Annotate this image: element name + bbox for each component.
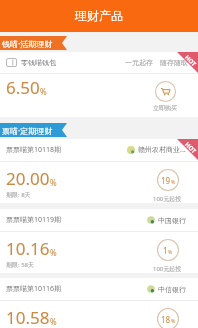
staticText: % bbox=[168, 249, 173, 256]
staticText: % bbox=[171, 179, 176, 186]
staticText: 10.16 bbox=[6, 237, 50, 260]
staticText: 中国银行 bbox=[158, 216, 186, 225]
staticText: % bbox=[50, 247, 57, 258]
staticText: % bbox=[50, 316, 57, 327]
staticText: 零钱喵钱包 bbox=[21, 58, 56, 67]
button[interactable]: 票喵·定期理财 bbox=[0, 123, 198, 137]
staticText: HOT bbox=[183, 54, 198, 68]
staticText: % bbox=[40, 86, 47, 97]
staticText: 随存随取 bbox=[160, 58, 188, 67]
staticText: HOT bbox=[183, 141, 198, 155]
staticText: 钱喵·活期理财 bbox=[2, 38, 53, 49]
staticText: 赣州农村商业... bbox=[138, 145, 186, 155]
staticText: 100元起投 bbox=[153, 195, 182, 203]
staticText: 票票喵第10118期 bbox=[6, 145, 62, 155]
button[interactable]: 立即投资 bbox=[153, 239, 182, 273]
button[interactable]: 钱喵·活期理财 bbox=[0, 36, 198, 50]
staticText: 19 bbox=[161, 175, 171, 186]
staticText: 100元起投 bbox=[153, 265, 182, 273]
button[interactable]: 立即投资 bbox=[153, 308, 182, 328]
button[interactable]: 票票喵第10119期 bbox=[0, 209, 198, 273]
button[interactable]: 票票喵第10118期 bbox=[0, 139, 198, 203]
staticText: 立即购买 bbox=[153, 104, 177, 112]
button[interactable]: 立即购买 bbox=[153, 81, 177, 112]
staticText: 20.00 bbox=[6, 167, 50, 190]
staticText: 期限: 58天 bbox=[6, 261, 35, 269]
staticText: 票票喵第10116期 bbox=[6, 284, 62, 294]
staticText: 一元起存 bbox=[125, 58, 153, 67]
staticText: 票喵·定期理财 bbox=[2, 125, 53, 136]
staticText: 1 bbox=[163, 245, 168, 256]
staticText: 中信银行 bbox=[158, 285, 186, 294]
button[interactable]: 零钱喵钱包 bbox=[0, 52, 198, 117]
staticText: % bbox=[171, 318, 176, 325]
staticText: 票票喵第10119期 bbox=[6, 215, 62, 225]
button[interactable]: 票票喵第10116期 bbox=[0, 278, 198, 328]
staticText: 理财产品 bbox=[75, 8, 123, 23]
staticText: 期限: 8天 bbox=[6, 191, 31, 199]
staticText: % bbox=[50, 177, 57, 188]
staticText: 10.58 bbox=[6, 306, 50, 328]
button[interactable]: 理财产品 bbox=[0, 0, 198, 32]
button[interactable]: 立即投资 bbox=[153, 169, 182, 203]
staticText: 18 bbox=[161, 314, 171, 325]
staticText: 6.50 bbox=[6, 76, 40, 99]
